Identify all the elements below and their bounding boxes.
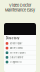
button[interactable]: Software update [4, 51, 36, 55]
staticText: Battery check [9, 47, 22, 49]
button[interactable]: Battery check [4, 46, 36, 50]
staticText: Video Doctor [9, 3, 31, 8]
staticText: Data transfer [9, 56, 23, 59]
staticText: Diagnostics [9, 61, 21, 63]
button[interactable]: Diagnostics [4, 60, 36, 64]
button[interactable]: Screen repair [4, 41, 36, 46]
staticText: Maintenance Easy [5, 8, 35, 12]
staticText: Screen repair [9, 42, 22, 45]
staticText: Software update [9, 51, 25, 54]
staticText: Directory [6, 36, 20, 40]
button[interactable]: Data transfer [4, 55, 36, 60]
